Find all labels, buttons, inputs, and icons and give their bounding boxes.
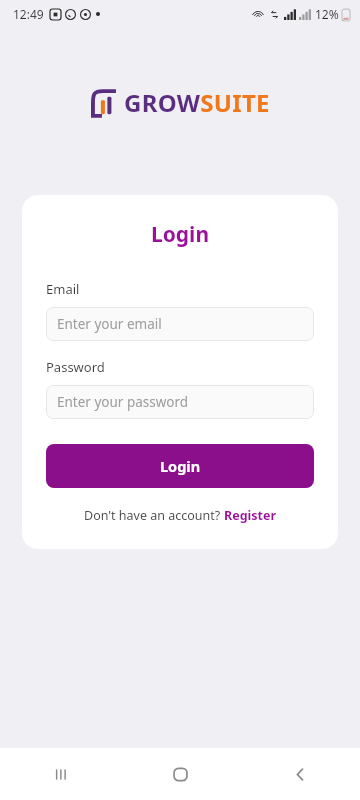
button[interactable]: Don't have an account? [84, 507, 277, 524]
staticText: Don't have an account? [84, 507, 224, 524]
button[interactable]: Login [46, 444, 314, 488]
button[interactable]: Enter your email [46, 307, 314, 341]
staticText: Enter your email [57, 315, 162, 333]
staticText: Register [224, 507, 277, 524]
staticText: Login [46, 220, 314, 249]
button[interactable]: Enter your password [46, 385, 314, 419]
staticText: Login [160, 456, 201, 476]
button[interactable]: Home [120, 748, 240, 800]
staticText: 12% [315, 6, 339, 22]
staticText: 12:49 [13, 6, 44, 22]
button[interactable]: Recent apps [0, 748, 120, 800]
staticText: Enter your password [57, 393, 189, 411]
staticText: Password [46, 358, 105, 376]
staticText: GROWSUITE [124, 86, 270, 119]
staticText: Email [46, 280, 80, 298]
button[interactable]: Back [240, 748, 360, 800]
